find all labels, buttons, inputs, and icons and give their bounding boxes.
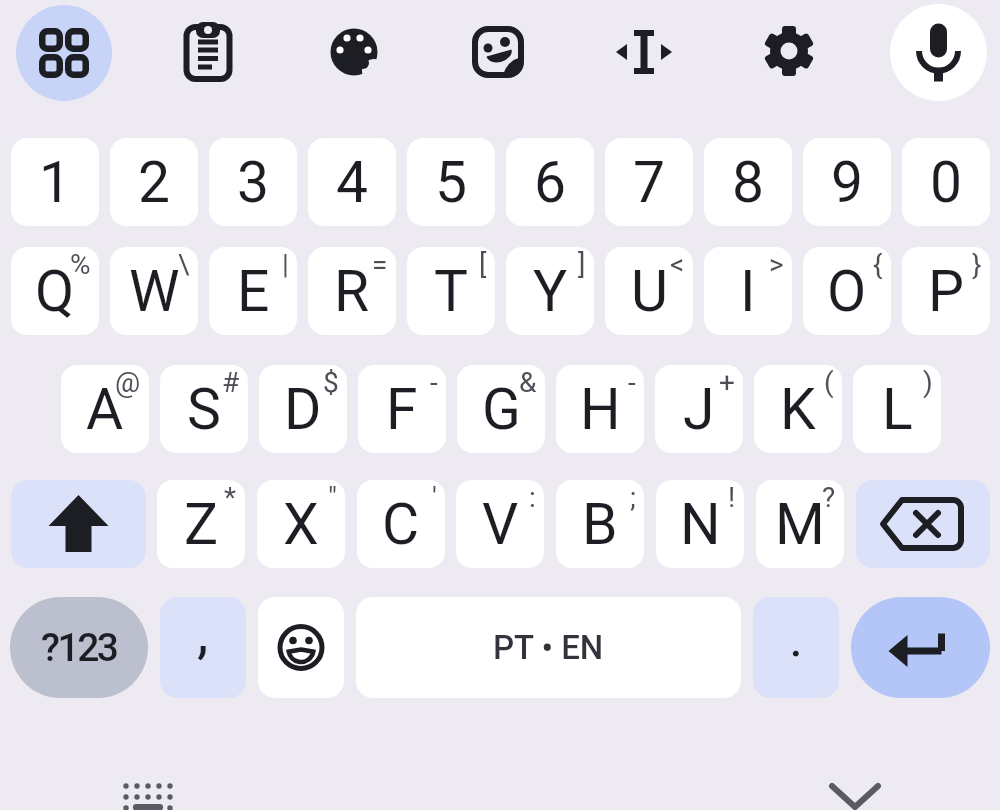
button[interactable]	[825, 772, 885, 810]
button[interactable]: D	[259, 365, 347, 453]
button[interactable]: 0	[902, 138, 990, 226]
staticText: {	[873, 248, 883, 281]
staticText: H	[580, 376, 621, 443]
button[interactable]: R	[308, 247, 396, 335]
button[interactable]: PT • EN	[356, 597, 741, 698]
button[interactable]	[170, 15, 246, 91]
button[interactable]: V	[456, 480, 544, 568]
staticText: O	[827, 258, 867, 325]
staticText: 7	[633, 149, 666, 216]
staticText: X	[283, 491, 319, 558]
staticText: $	[323, 366, 339, 399]
button[interactable]: L	[853, 365, 941, 453]
button[interactable]: A	[61, 365, 149, 453]
staticText: ?123	[41, 625, 117, 671]
staticText: N	[680, 491, 721, 558]
staticText: ;	[630, 481, 636, 514]
staticText: :	[529, 481, 536, 514]
staticText: Y	[533, 258, 568, 325]
button[interactable]	[116, 772, 180, 810]
staticText: Z	[184, 491, 219, 558]
staticText: 5	[435, 149, 468, 216]
staticText: S	[187, 376, 221, 443]
button[interactable]	[890, 4, 987, 101]
button[interactable]: 3	[209, 138, 297, 226]
staticText: 2	[138, 149, 171, 216]
button[interactable]: K	[754, 365, 842, 453]
staticText: F	[386, 376, 418, 443]
button[interactable]: W	[110, 247, 198, 335]
button[interactable]	[856, 480, 990, 568]
button[interactable]: Q	[11, 247, 99, 335]
button[interactable]: 1	[11, 138, 99, 226]
staticText: W	[129, 258, 180, 325]
staticText: 9	[831, 149, 864, 216]
button[interactable]: N	[656, 480, 744, 568]
button[interactable]: C	[357, 480, 445, 568]
staticText: 0	[930, 149, 963, 216]
button[interactable]: M	[756, 480, 844, 568]
staticText: !	[728, 481, 736, 514]
button[interactable]	[751, 13, 827, 89]
button[interactable]: T	[407, 247, 495, 335]
button[interactable]	[16, 5, 112, 101]
button[interactable]: I	[704, 247, 792, 335]
button[interactable]: 6	[506, 138, 594, 226]
staticText: E	[237, 258, 270, 325]
staticText: 1	[39, 149, 72, 216]
button[interactable]: E	[209, 247, 297, 335]
button[interactable]	[851, 597, 990, 698]
staticText: \	[178, 248, 190, 281]
staticText: G	[482, 376, 521, 443]
button[interactable]	[258, 597, 344, 698]
staticText: =	[372, 248, 388, 281]
staticText: 4	[336, 149, 369, 216]
staticText: >	[769, 248, 784, 281]
button[interactable]: 9	[803, 138, 891, 226]
staticText: #	[222, 366, 240, 399]
staticText: (	[824, 366, 834, 399]
button[interactable]: 5	[407, 138, 495, 226]
button[interactable]: ,	[160, 597, 246, 698]
button[interactable]	[605, 14, 681, 90]
button[interactable]: J	[655, 365, 743, 453]
button[interactable]: H	[556, 365, 644, 453]
button[interactable]: ?123	[10, 597, 148, 698]
button[interactable]: Y	[506, 247, 594, 335]
staticText: B	[582, 491, 618, 558]
button[interactable]: S	[160, 365, 248, 453]
button[interactable]: X	[257, 480, 345, 568]
button[interactable]: U	[605, 247, 693, 335]
button[interactable]	[315, 14, 391, 90]
staticText: K	[780, 376, 816, 443]
button[interactable]	[11, 480, 146, 568]
button[interactable]: G	[457, 365, 545, 453]
staticText: +	[719, 366, 735, 399]
staticText: .	[789, 606, 804, 669]
button[interactable]: P	[902, 247, 990, 335]
button[interactable]: 4	[308, 138, 396, 226]
button[interactable]: 2	[110, 138, 198, 226]
button[interactable]: .	[753, 597, 839, 698]
staticText: L	[882, 376, 913, 443]
button[interactable]: O	[803, 247, 891, 335]
staticText: <	[670, 248, 685, 281]
staticText: |	[282, 248, 289, 281]
button[interactable]: 8	[704, 138, 792, 226]
staticText: P	[928, 258, 964, 325]
staticText: V	[482, 491, 519, 558]
staticText: %	[70, 248, 91, 281]
button[interactable]: B	[556, 480, 644, 568]
staticText: -	[430, 366, 438, 399]
button[interactable]: Z	[157, 480, 245, 568]
staticText: M	[775, 491, 825, 558]
button[interactable]: F	[358, 365, 446, 453]
staticText: 3	[237, 149, 270, 216]
staticText: [	[479, 248, 487, 281]
staticText: )	[923, 366, 933, 399]
staticText: -	[628, 366, 636, 399]
button[interactable]	[460, 14, 536, 90]
staticText: C	[382, 491, 420, 558]
button[interactable]: 7	[605, 138, 693, 226]
staticText: 6	[534, 149, 567, 216]
